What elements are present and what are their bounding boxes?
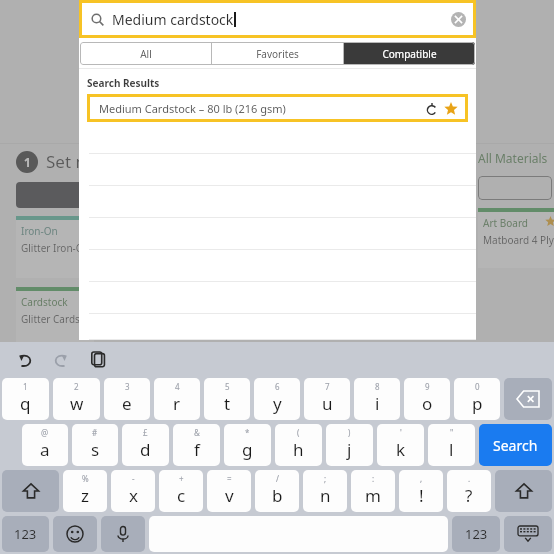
button[interactable]: 123	[2, 516, 49, 552]
staticText: ?	[465, 484, 473, 507]
staticText: Search	[493, 436, 538, 455]
button[interactable]: (	[275, 424, 322, 466]
staticText: Glitter Cards	[21, 312, 80, 326]
button[interactable]: ,	[399, 470, 443, 512]
staticText: w	[70, 392, 84, 415]
staticText: )	[348, 427, 351, 438]
button[interactable]: Medium cardstock	[79, 0, 476, 38]
staticText: a	[40, 438, 50, 461]
button[interactable]: 5	[204, 378, 250, 420]
staticText: &	[194, 427, 200, 438]
button[interactable]: 1	[2, 378, 49, 420]
button[interactable]: &	[173, 424, 220, 466]
staticText: =	[227, 473, 232, 484]
button[interactable]: £	[122, 424, 169, 466]
staticText: (	[297, 427, 300, 438]
button[interactable]: 6	[254, 378, 300, 420]
button[interactable]: Shift	[2, 470, 59, 512]
staticText: Medium Cardstock – 80 lb (216 gsm)	[99, 101, 286, 116]
other: Cricut	[426, 103, 438, 115]
button[interactable]: Shift	[495, 470, 552, 512]
staticText: r	[173, 392, 181, 415]
staticText: #	[92, 427, 98, 438]
button[interactable]: 123	[452, 516, 500, 552]
button[interactable]: %	[63, 470, 107, 512]
staticText: d	[140, 438, 151, 461]
button[interactable]: -	[111, 470, 155, 512]
staticText: '	[400, 427, 402, 438]
staticText: 9	[425, 381, 430, 392]
button[interactable]: 0	[454, 378, 500, 420]
button[interactable]: +	[159, 470, 203, 512]
button[interactable]: =	[207, 470, 251, 512]
staticText: u	[322, 392, 333, 415]
staticText: t	[224, 392, 231, 415]
button[interactable]: 9	[404, 378, 450, 420]
staticText: Matboard 4 Ply	[483, 233, 554, 247]
button[interactable]: Backspace	[504, 378, 552, 420]
staticText: 4	[175, 381, 180, 392]
staticText: Cardstock	[21, 295, 68, 309]
staticText: 123	[465, 525, 488, 543]
staticText: .	[468, 473, 471, 484]
button[interactable]: *	[224, 424, 271, 466]
staticText: k	[396, 438, 406, 461]
staticText: Art Board	[483, 216, 528, 230]
staticText: o	[422, 392, 433, 415]
staticText: Search Results	[87, 76, 160, 90]
staticText: e	[122, 392, 132, 415]
staticText: x	[129, 484, 138, 507]
staticText: 8	[375, 381, 380, 392]
button[interactable]: 7	[304, 378, 350, 420]
button[interactable]: Redo	[48, 347, 74, 373]
staticText: j	[347, 438, 352, 461]
button[interactable]: @	[22, 424, 68, 466]
staticText: 1	[24, 154, 31, 170]
button[interactable]: #	[72, 424, 118, 466]
staticText: v	[225, 484, 234, 507]
button[interactable]: 2	[53, 378, 100, 420]
button[interactable]: .	[447, 470, 491, 512]
button[interactable]: Hide keyboard	[504, 516, 552, 552]
button[interactable]: 4	[154, 378, 200, 420]
staticText: 1	[23, 381, 28, 392]
button[interactable]: '	[377, 424, 424, 466]
staticText: 5	[225, 381, 230, 392]
staticText: "	[450, 427, 454, 438]
staticText: All Materials	[478, 150, 548, 166]
button[interactable]: Favorite	[444, 102, 458, 116]
button[interactable]: Undo	[12, 347, 38, 373]
staticText: *	[245, 427, 250, 438]
button[interactable]: :	[351, 470, 395, 512]
staticText: 6	[275, 381, 280, 392]
staticText: l	[449, 438, 454, 461]
staticText: z	[81, 484, 89, 507]
button[interactable]: 8	[354, 378, 400, 420]
staticText: 2	[74, 381, 79, 392]
button[interactable]: Clear search	[451, 12, 466, 27]
button[interactable]: Compatible	[344, 42, 475, 65]
button[interactable]: Emoji	[53, 516, 97, 552]
button[interactable]: Medium Cardstock – 80 lb (216 gsm)	[87, 94, 468, 122]
staticText: c	[177, 484, 186, 507]
staticText: f	[194, 438, 200, 461]
staticText: All	[140, 47, 152, 61]
staticText: m	[365, 484, 381, 507]
button[interactable]: /	[255, 470, 299, 512]
button[interactable]: Search	[479, 424, 552, 466]
button[interactable]: All	[80, 42, 211, 65]
button[interactable]: )	[326, 424, 373, 466]
button[interactable]: 3	[104, 378, 150, 420]
button[interactable]: Dictate	[101, 516, 145, 552]
button[interactable]: "	[428, 424, 475, 466]
staticText: h	[293, 438, 304, 461]
button[interactable]: Favorites	[212, 42, 343, 65]
staticText: g	[242, 438, 253, 461]
button[interactable]: Paste	[86, 347, 112, 373]
button[interactable]: ;	[303, 470, 347, 512]
staticText: Favorites	[256, 47, 299, 61]
staticText: /	[276, 473, 279, 484]
staticText: ;	[324, 473, 327, 484]
staticText: Set m	[46, 150, 92, 173]
